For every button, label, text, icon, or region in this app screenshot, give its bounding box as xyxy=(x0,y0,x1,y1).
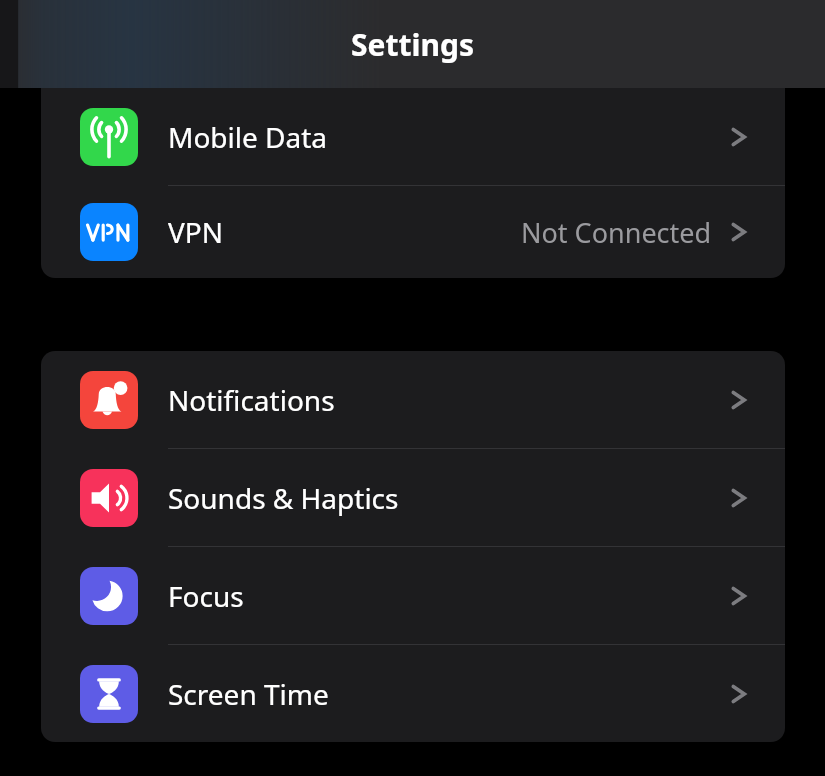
other: Sounds and Haptics xyxy=(80,469,138,527)
staticText: Sounds & Haptics xyxy=(168,479,399,517)
other: Focus xyxy=(80,567,138,625)
staticText: Focus xyxy=(168,577,244,615)
other: Mobile Data xyxy=(80,108,138,166)
button[interactable]: VPN xyxy=(41,186,785,278)
staticText: Settings xyxy=(351,24,474,65)
staticText: Notifications xyxy=(168,381,335,419)
staticText: VPN xyxy=(168,213,224,251)
staticText: Screen Time xyxy=(168,675,329,713)
staticText: Not Connected xyxy=(521,214,712,251)
button[interactable]: Focus xyxy=(41,547,785,645)
other: Notifications xyxy=(80,371,138,429)
other: Screen Time xyxy=(80,665,138,723)
button[interactable]: Sounds and Haptics xyxy=(41,449,785,547)
button[interactable]: Screen Time xyxy=(41,645,785,742)
other: VPN xyxy=(80,203,138,261)
button[interactable]: Mobile Data xyxy=(41,88,785,186)
button[interactable]: Notifications xyxy=(41,351,785,449)
staticText: Mobile Data xyxy=(168,118,328,156)
